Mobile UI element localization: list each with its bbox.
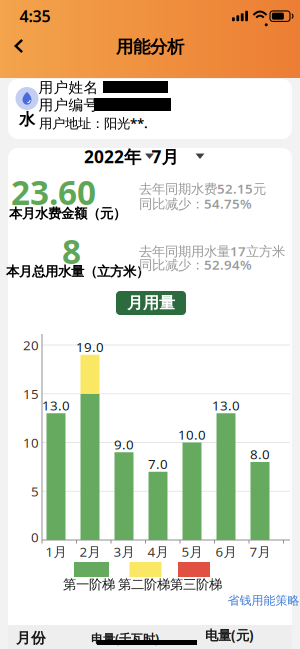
staticText: 去年同期水费52.15元 bbox=[139, 180, 266, 197]
staticText: 用户姓名：* bbox=[38, 77, 121, 97]
staticText: 13.0 bbox=[42, 396, 70, 414]
staticText: 15 bbox=[23, 385, 39, 403]
button[interactable]: 返回 bbox=[5, 30, 32, 61]
staticText: 本月水费金额（元） bbox=[9, 205, 126, 222]
staticText: 本月总用水量（立方米） bbox=[6, 263, 149, 280]
staticText: 同比减少：52.94% bbox=[139, 256, 252, 273]
button[interactable]: 2022年 bbox=[84, 145, 154, 168]
staticText: 同比减少：54.75% bbox=[139, 195, 252, 212]
staticText: 7月 bbox=[151, 145, 178, 168]
staticText: 月份 bbox=[16, 629, 46, 647]
staticText: 2月 bbox=[79, 543, 100, 560]
staticText: 10 bbox=[23, 434, 39, 451]
staticText: 8.0 bbox=[250, 445, 270, 463]
staticText: 20 bbox=[23, 336, 39, 354]
staticText: 用户编号： bbox=[38, 96, 113, 114]
staticText: 月用量 bbox=[127, 293, 175, 313]
staticText: 0 bbox=[31, 528, 39, 546]
staticText: 13.0 bbox=[212, 396, 240, 414]
button[interactable]: 月用量 bbox=[116, 291, 186, 315]
staticText: 第二阶梯 bbox=[118, 576, 170, 593]
staticText: 9.0 bbox=[114, 435, 134, 453]
staticText: 电量(千瓦时) bbox=[91, 630, 159, 646]
staticText: 7.0 bbox=[148, 455, 168, 473]
staticText: 19.0 bbox=[76, 338, 104, 356]
staticText: 8 bbox=[62, 229, 81, 273]
staticText: 电量(元) bbox=[205, 626, 254, 644]
staticText: 用户地址：阳光**. bbox=[39, 114, 148, 132]
staticText: 4:35 bbox=[19, 5, 50, 27]
staticText: 7月 bbox=[249, 543, 270, 560]
staticText: 6月 bbox=[215, 543, 236, 560]
button[interactable]: 省钱用能策略 bbox=[227, 593, 299, 608]
staticText: 第一阶梯 bbox=[63, 576, 115, 593]
staticText: 5月 bbox=[181, 543, 202, 560]
staticText: 5 bbox=[31, 482, 39, 500]
button[interactable]: 7月 bbox=[151, 145, 204, 168]
staticText: 23.60 bbox=[11, 170, 96, 214]
staticText: 第三阶梯 bbox=[170, 576, 222, 593]
staticText: 3月 bbox=[113, 543, 134, 560]
staticText: 2022年 bbox=[84, 145, 141, 168]
staticText: 4月 bbox=[147, 543, 168, 560]
staticText: 水 bbox=[19, 110, 35, 129]
staticText: 1月 bbox=[45, 543, 66, 560]
staticText: 去年同期用水量17立方米 bbox=[139, 242, 285, 260]
staticText: 省钱用能策略 bbox=[227, 593, 299, 608]
staticText: 10.0 bbox=[178, 426, 206, 443]
staticText: 用能分析 bbox=[116, 36, 184, 58]
